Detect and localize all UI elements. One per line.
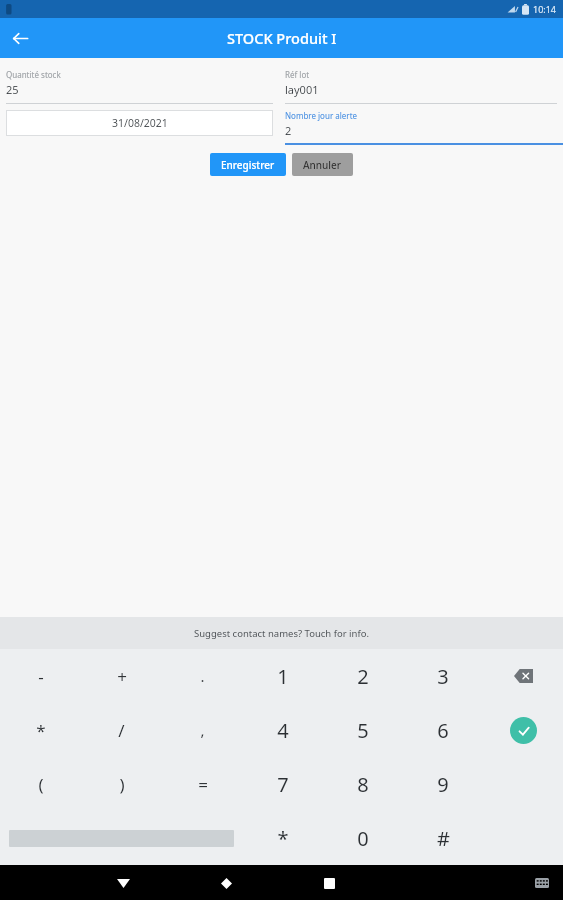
button[interactable]: ) (81, 757, 162, 811)
button[interactable]: Change keyboard (525, 866, 559, 900)
staticText: + (117, 665, 127, 688)
button[interactable]: Réf lot (285, 58, 557, 104)
button[interactable]: , (162, 703, 243, 757)
staticText: 6 (437, 717, 449, 744)
button[interactable]: 3 (403, 649, 483, 703)
button[interactable]: Quantité stock (6, 58, 273, 104)
button[interactable]: 31/08/2021 (6, 110, 273, 136)
button[interactable]: + (81, 649, 162, 703)
button[interactable]: 7 (243, 757, 323, 811)
staticText: 5 (357, 717, 369, 744)
staticText: 8 (357, 771, 369, 798)
staticText: lay001 (285, 82, 319, 97)
button[interactable]: Suggest contact names? Touch for info. (0, 617, 563, 649)
button[interactable]: 9 (403, 757, 483, 811)
button[interactable]: * (242, 811, 323, 865)
staticText: 2 (285, 123, 292, 138)
staticText: 2 (357, 663, 369, 690)
button[interactable]: - (0, 649, 81, 703)
staticText: ( (38, 773, 44, 796)
staticText: * (36, 719, 46, 742)
button[interactable]: 1 (243, 649, 323, 703)
staticText: ) (119, 773, 125, 796)
staticText: Quantité stock (6, 69, 61, 80)
button[interactable]: 8 (323, 757, 403, 811)
button[interactable]: Space (0, 811, 242, 865)
staticText: 7 (277, 771, 289, 798)
button[interactable]: # (403, 811, 483, 865)
staticText: 10:14 (533, 3, 557, 15)
button[interactable]: . (162, 649, 243, 703)
staticText: 25 (6, 82, 19, 97)
staticText: 4 (277, 717, 289, 744)
button[interactable]: ( (0, 757, 81, 811)
staticText: . (200, 666, 205, 686)
staticText: = (198, 773, 208, 796)
button[interactable]: 0 (323, 811, 403, 865)
staticText: 9 (437, 771, 449, 798)
button[interactable]: Recent apps (312, 866, 346, 900)
button[interactable]: Enter (483, 703, 563, 757)
button[interactable]: / (81, 703, 162, 757)
staticText: * (277, 825, 289, 852)
staticText: Suggest contact names? Touch for info. (194, 627, 369, 640)
button[interactable]: 6 (403, 703, 483, 757)
button[interactable]: Home (209, 866, 243, 900)
button[interactable]: Nombre jour alerte (285, 110, 563, 145)
button[interactable]: Back (0, 18, 40, 58)
staticText: # (437, 825, 450, 852)
staticText: Nombre jour alerte (285, 110, 358, 121)
staticText: STOCK Produit I (227, 28, 337, 48)
button[interactable]: Backspace (483, 649, 563, 703)
staticText: - (38, 665, 44, 688)
button[interactable]: = (162, 757, 243, 811)
staticText: Enregistrer (221, 158, 275, 172)
staticText: 3 (437, 663, 449, 690)
staticText: Annuler (303, 158, 342, 172)
staticText: 31/08/2021 (112, 116, 168, 130)
staticText: / (118, 719, 125, 742)
button[interactable]: 2 (323, 649, 403, 703)
button[interactable]: Annuler (292, 153, 353, 176)
staticText: 1 (277, 663, 289, 690)
button[interactable]: Back (106, 866, 140, 900)
button[interactable]: 4 (243, 703, 323, 757)
button[interactable]: * (0, 703, 81, 757)
button[interactable]: Enregistrer (210, 153, 286, 176)
staticText: Réf lot (285, 69, 310, 80)
staticText: 0 (357, 825, 369, 852)
button[interactable]: 5 (323, 703, 403, 757)
staticText: , (200, 720, 205, 740)
